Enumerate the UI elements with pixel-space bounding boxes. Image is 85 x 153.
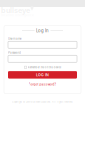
staticText: Username — [8, 37, 22, 40]
staticText: LOG IN — [36, 73, 49, 77]
button[interactable]: Remember me on this device — [8, 65, 77, 69]
staticText: Password — [8, 51, 21, 54]
staticText: Remember me on this device — [28, 66, 61, 69]
button[interactable]: LOG IN — [8, 71, 77, 79]
staticText: Log In — [36, 28, 49, 33]
staticText: bullseye — [1, 6, 30, 15]
button[interactable]: Forgot password? — [8, 82, 77, 87]
staticText: Copyright © 2019 Bullseye Locations. All… — [12, 101, 73, 103]
staticText: Forgot password? — [28, 83, 56, 86]
